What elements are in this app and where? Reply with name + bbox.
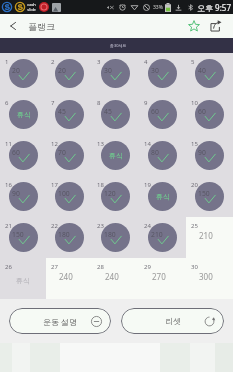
staticText: 300	[199, 271, 213, 282]
button[interactable]: 17	[46, 176, 92, 217]
staticText: 240	[105, 271, 119, 282]
button[interactable]: 12	[46, 135, 92, 176]
staticText: 29	[144, 263, 151, 271]
staticText: 100	[58, 189, 70, 198]
staticText: 26	[5, 263, 12, 271]
staticText: 210	[151, 230, 163, 239]
staticText: 210	[199, 230, 213, 241]
button[interactable]: 2	[46, 53, 92, 94]
staticText: 27	[51, 263, 58, 271]
button[interactable]: 21	[0, 217, 46, 258]
button[interactable]: 10	[186, 94, 233, 135]
staticText: 90	[12, 189, 20, 198]
staticText: 휴식	[16, 276, 30, 285]
button[interactable]: 18	[92, 176, 139, 217]
staticText: 7	[51, 99, 55, 107]
staticText: 17	[51, 181, 58, 189]
button[interactable]: 26	[0, 258, 46, 299]
button[interactable]: 9	[139, 94, 186, 135]
staticText: 60	[12, 148, 20, 157]
staticText: 22	[51, 222, 58, 230]
button[interactable]: 27	[46, 258, 92, 299]
button[interactable]: 운동 설명	[9, 308, 111, 334]
button[interactable]: 1	[0, 53, 46, 94]
staticText: 60	[151, 107, 159, 116]
staticText: 13	[97, 140, 104, 148]
staticText: 240	[59, 271, 73, 282]
staticText: 28	[97, 263, 104, 271]
staticText: 14	[144, 140, 151, 148]
staticText: 9	[144, 99, 148, 107]
staticText: 리셋	[165, 316, 181, 326]
staticText: 120	[104, 189, 116, 198]
staticText: 60	[198, 107, 206, 116]
button[interactable]: 30	[186, 258, 233, 299]
button[interactable]: 11	[0, 135, 46, 176]
button[interactable]: 8	[92, 94, 139, 135]
staticText: 오후 9:57	[197, 2, 231, 13]
staticText: 20	[58, 66, 66, 75]
staticText: 10	[191, 99, 198, 107]
staticText: 2	[51, 58, 55, 66]
staticText: 11	[5, 140, 12, 148]
staticText: 20	[191, 181, 198, 189]
button[interactable]: 28	[92, 258, 139, 299]
staticText: 30	[191, 263, 198, 271]
button[interactable]: 16	[0, 176, 46, 217]
staticText: 8	[97, 99, 101, 107]
staticText: 6	[5, 99, 9, 107]
staticText: 40	[198, 66, 206, 75]
staticText: 휴식	[109, 151, 123, 160]
staticText: 16	[5, 181, 12, 189]
button[interactable]: 20	[186, 176, 233, 217]
button[interactable]: 리셋	[121, 308, 224, 334]
button[interactable]: 23	[92, 217, 139, 258]
staticText: 플랭크	[28, 21, 55, 32]
staticText: 80	[151, 148, 159, 157]
button[interactable]: 5	[186, 53, 233, 94]
staticText: 휴식	[17, 110, 31, 119]
button[interactable]: 13	[92, 135, 139, 176]
staticText: 15	[191, 140, 198, 148]
staticText: 45	[104, 107, 112, 116]
button[interactable]: Favorite	[183, 14, 205, 38]
button[interactable]: 6	[0, 94, 46, 135]
staticText: 30	[104, 66, 112, 75]
staticText: 70	[58, 148, 66, 157]
button[interactable]: 19	[139, 176, 186, 217]
button[interactable]: Share	[205, 14, 227, 38]
button[interactable]: 25	[186, 217, 233, 258]
staticText: 23	[97, 222, 104, 230]
button[interactable]: Back	[0, 14, 25, 38]
staticText: 150	[198, 189, 210, 198]
staticText: 150	[12, 230, 24, 239]
staticText: 운동 설명	[43, 316, 78, 327]
staticText: 12	[51, 140, 58, 148]
button[interactable]: 7	[46, 94, 92, 135]
staticText: 24	[144, 222, 151, 230]
staticText: 3	[97, 58, 101, 66]
button[interactable]: 3	[92, 53, 139, 94]
staticText: 33%	[153, 4, 163, 11]
button[interactable]: 4	[139, 53, 186, 94]
button[interactable]: 15	[186, 135, 233, 176]
staticText: 18	[97, 181, 104, 189]
staticText: 4	[144, 58, 148, 66]
button[interactable]: 24	[139, 217, 186, 258]
staticText: 총30세트	[110, 43, 127, 48]
staticText: 19	[144, 181, 151, 189]
staticText: 휴식	[156, 192, 170, 201]
staticText: 21	[5, 222, 12, 230]
staticText: 20	[12, 66, 20, 75]
staticText: 5	[191, 58, 195, 66]
button[interactable]: 29	[139, 258, 186, 299]
staticText: 45	[58, 107, 66, 116]
staticText: 25	[191, 222, 198, 230]
staticText: 180	[58, 230, 70, 239]
staticText: 270	[152, 271, 166, 282]
staticText: 180	[104, 230, 116, 239]
staticText: 30	[151, 66, 159, 75]
staticText: 90	[198, 148, 206, 157]
button[interactable]: 22	[46, 217, 92, 258]
button[interactable]: 14	[139, 135, 186, 176]
